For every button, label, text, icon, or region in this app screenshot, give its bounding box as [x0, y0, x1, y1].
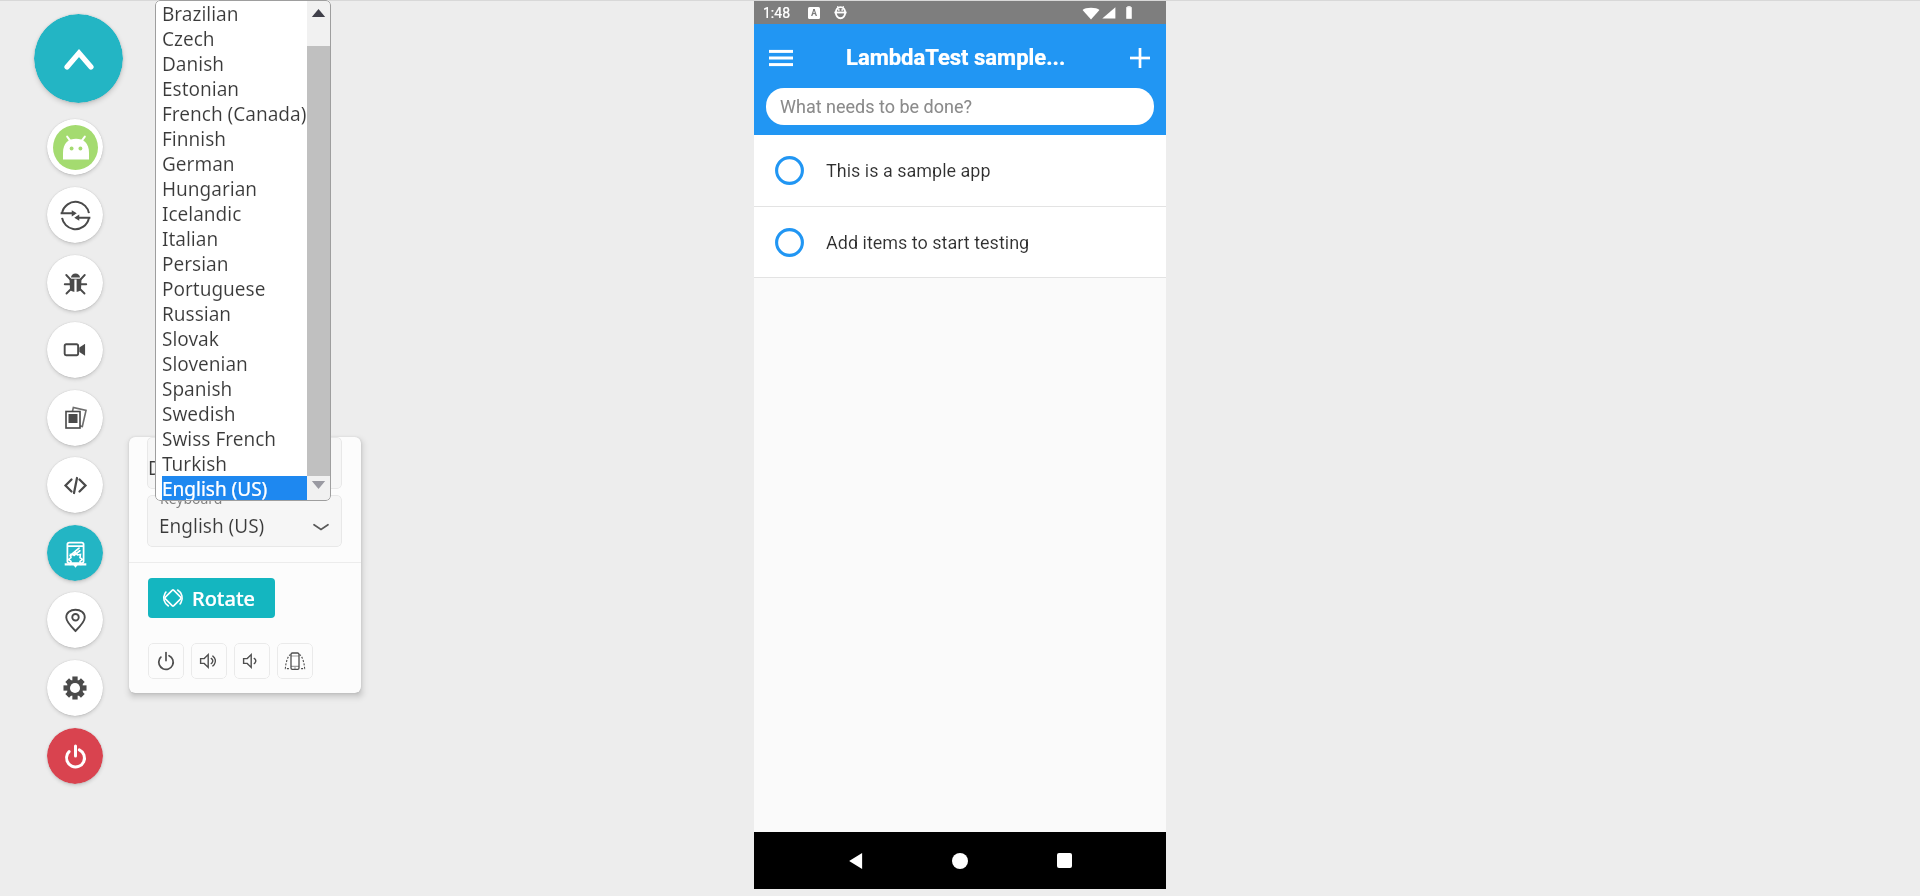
- staticText: Droid Turbo: [148, 455, 255, 481]
- button[interactable]: Markup: [47, 525, 103, 581]
- button[interactable]: Rotate: [148, 578, 275, 618]
- button[interactable]: German: [162, 151, 322, 176]
- staticText: This is a sample app: [826, 160, 991, 181]
- button[interactable]: Back: [827, 832, 885, 889]
- button[interactable]: Collapse: [34, 14, 123, 103]
- button[interactable]: Hungarian: [162, 176, 322, 201]
- staticText: What needs to be done?: [780, 96, 972, 117]
- button[interactable]: Finnish: [162, 126, 322, 151]
- staticText: Add items to start testing: [826, 232, 1030, 253]
- staticText: Slovenian: [162, 351, 248, 376]
- staticText: Icelandic: [162, 201, 242, 226]
- staticText: German: [162, 151, 235, 176]
- button[interactable]: Shake: [277, 643, 313, 679]
- button[interactable]: Device: [147, 437, 342, 489]
- button[interactable]: Power: [148, 643, 184, 679]
- staticText: LambdaTest sample...: [846, 45, 1066, 71]
- staticText: Estonian: [162, 76, 240, 101]
- staticText: Turkish: [162, 451, 228, 476]
- button[interactable]: Spanish: [162, 376, 322, 401]
- button[interactable]: English (US): [162, 476, 311, 501]
- staticText: French (Canada): [162, 101, 307, 126]
- button[interactable]: Record: [47, 322, 103, 378]
- staticText: Swedish: [162, 401, 236, 426]
- button[interactable]: This is a sample app: [754, 135, 1166, 206]
- staticText: Keyboard: [160, 495, 223, 508]
- button[interactable]: Slovenian: [162, 351, 322, 376]
- staticText: Spanish: [162, 376, 233, 401]
- button[interactable]: Slovak: [162, 326, 322, 351]
- button[interactable]: Device: [47, 119, 103, 175]
- button[interactable]: What needs to be done?: [766, 88, 1154, 125]
- staticText: Slovak: [162, 326, 219, 351]
- button[interactable]: Screenshots: [47, 390, 103, 446]
- button[interactable]: Volume up: [191, 643, 227, 679]
- staticText: 1:48: [763, 5, 790, 21]
- staticText: Brazilian: [162, 1, 239, 26]
- button[interactable]: Swiss French: [162, 426, 322, 451]
- staticText: English (US): [162, 476, 268, 501]
- button[interactable]: Code: [47, 457, 103, 513]
- button[interactable]: Turkish: [162, 451, 322, 476]
- button[interactable]: Settings: [47, 660, 103, 716]
- staticText: English (US): [159, 513, 265, 539]
- button[interactable]: Stop session: [47, 728, 103, 784]
- button[interactable]: Czech: [162, 26, 322, 51]
- button[interactable]: Add: [1116, 34, 1164, 82]
- button[interactable]: Brazilian: [162, 1, 322, 26]
- button[interactable]: Estonian: [162, 76, 322, 101]
- button[interactable]: Volume down: [234, 643, 270, 679]
- button[interactable]: French (Canada): [162, 101, 322, 126]
- button[interactable]: Keyboard: [147, 495, 342, 547]
- staticText: Czech: [162, 26, 215, 51]
- button[interactable]: Home: [931, 832, 989, 889]
- button[interactable]: Switch: [47, 187, 103, 243]
- button[interactable]: Italian: [162, 226, 322, 251]
- button[interactable]: Portuguese: [162, 276, 322, 301]
- staticText: Hungarian: [162, 176, 258, 201]
- staticText: Danish: [162, 51, 225, 76]
- button[interactable]: Swedish: [162, 401, 322, 426]
- button[interactable]: Persian: [162, 251, 322, 276]
- staticText: Rotate: [192, 585, 256, 612]
- button[interactable]: Recents: [1035, 832, 1093, 889]
- staticText: Device: [160, 437, 204, 450]
- button[interactable]: Icelandic: [162, 201, 322, 226]
- staticText: A: [811, 8, 818, 19]
- staticText: Finnish: [162, 126, 226, 151]
- button[interactable]: Bug: [47, 255, 103, 311]
- staticText: Portuguese: [162, 276, 266, 301]
- staticText: Swiss French: [162, 426, 277, 451]
- staticText: Italian: [162, 226, 219, 251]
- staticText: Persian: [162, 251, 229, 276]
- button[interactable]: Russian: [162, 301, 322, 326]
- button[interactable]: Add items to start testing: [754, 207, 1166, 277]
- staticText: Russian: [162, 301, 232, 326]
- button[interactable]: Danish: [162, 51, 322, 76]
- button[interactable]: Location: [47, 592, 103, 648]
- button[interactable]: Menu: [755, 34, 803, 82]
